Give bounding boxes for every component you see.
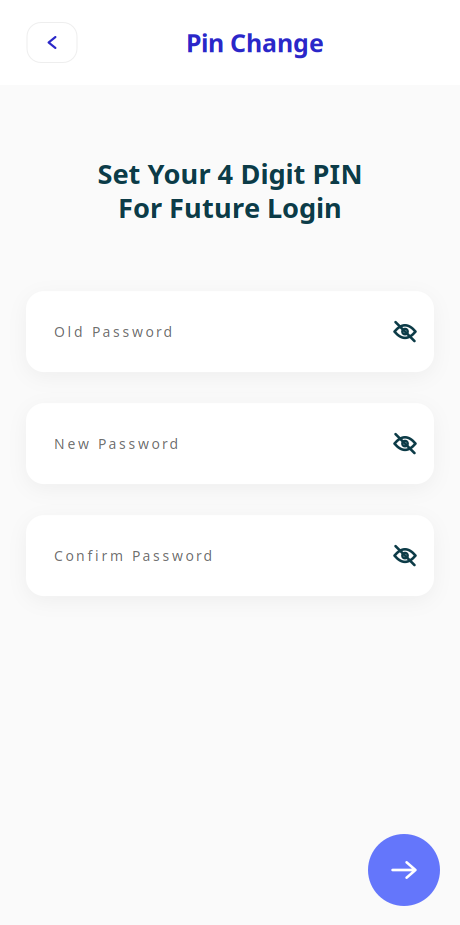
staticText: Confirm Password [54,546,212,565]
staticText: New Password [54,434,178,453]
staticText: Old Password [54,322,172,341]
button[interactable]: Back [27,22,77,62]
staticText: Set Your 4 Digit PIN [97,155,362,192]
button[interactable]: Continue [368,834,440,906]
staticText: For Future Login [118,189,342,226]
button[interactable]: Show password [383,310,427,354]
button[interactable]: Show password [383,422,427,466]
staticText: Pin Change [186,25,324,59]
button[interactable]: Show password [383,534,427,578]
